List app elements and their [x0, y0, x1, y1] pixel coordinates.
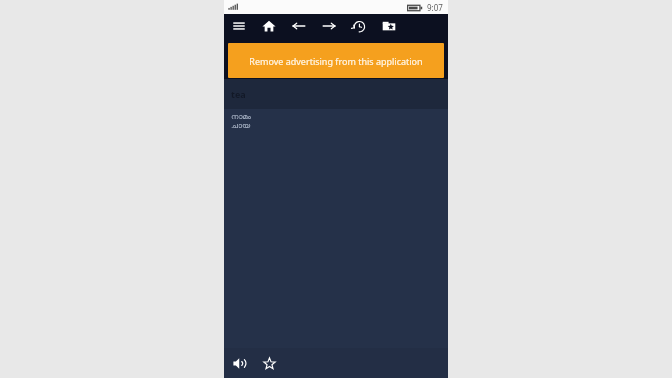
button[interactable]: History	[344, 14, 374, 38]
button[interactable]: Favourites	[374, 14, 404, 38]
staticText: Remove advertising from this application	[249, 55, 423, 67]
staticText: tea	[231, 88, 246, 100]
button[interactable]: Forward	[314, 14, 344, 38]
button[interactable]: Menu	[224, 14, 254, 38]
button[interactable]: Remove advertising from this application	[228, 43, 444, 78]
staticText: 9:07	[427, 2, 443, 13]
staticText: ചായ	[231, 122, 251, 130]
button[interactable]: Pronounce	[224, 348, 254, 378]
staticText: നാമം	[231, 113, 251, 121]
button[interactable]: Back	[284, 14, 314, 38]
button[interactable]: Home	[254, 14, 284, 38]
button[interactable]: Add to favourites	[254, 348, 284, 378]
